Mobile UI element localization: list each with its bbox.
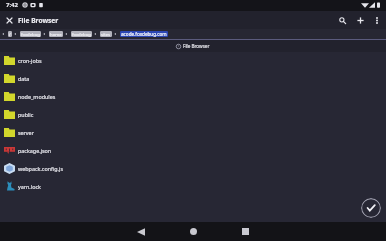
- staticText: /: [9, 31, 11, 37]
- button[interactable]: sites: [100, 31, 112, 37]
- button[interactable]: home: [49, 31, 63, 37]
- button[interactable]: acode.foxdebug.com: [120, 31, 168, 37]
- staticText: File Browser: [183, 43, 210, 49]
- button[interactable]: Close: [3, 14, 16, 27]
- button[interactable]: public: [0, 105, 386, 123]
- staticText: foxdebug: [21, 31, 40, 37]
- button[interactable]: cron-jobs: [0, 51, 386, 69]
- button[interactable]: package.json: [0, 141, 386, 159]
- staticText: File Browser: [18, 16, 59, 25]
- button[interactable]: Confirm: [361, 198, 381, 218]
- staticText: cron-jobs: [18, 57, 42, 64]
- button[interactable]: node_modules: [0, 87, 386, 105]
- staticText: data: [18, 75, 30, 82]
- staticText: sites: [101, 31, 111, 37]
- button[interactable]: Add: [351, 11, 369, 29]
- button[interactable]: File Browser: [166, 40, 220, 52]
- button[interactable]: Back: [128, 222, 154, 241]
- staticText: foxdebug: [72, 31, 91, 37]
- button[interactable]: yarn.lock: [0, 177, 386, 195]
- staticText: package.json: [18, 147, 52, 154]
- staticText: home: [50, 31, 62, 37]
- staticText: yarn.lock: [18, 183, 41, 190]
- button[interactable]: foxdebug: [20, 31, 41, 37]
- button[interactable]: server: [0, 123, 386, 141]
- button[interactable]: More options: [369, 13, 384, 28]
- staticText: 7:42: [6, 1, 18, 9]
- staticText: webpack.config.js: [18, 165, 64, 172]
- staticText: public: [18, 111, 34, 118]
- button[interactable]: Home: [180, 222, 206, 241]
- button[interactable]: data: [0, 69, 386, 87]
- staticText: server: [18, 129, 34, 136]
- button[interactable]: /: [8, 31, 12, 37]
- button[interactable]: Search: [334, 12, 351, 29]
- staticText: node_modules: [18, 93, 56, 100]
- button[interactable]: webpack.config.js: [0, 159, 386, 177]
- button[interactable]: Recents: [232, 222, 258, 241]
- button[interactable]: foxdebug: [71, 31, 92, 37]
- staticText: acode.foxdebug.com: [121, 31, 167, 37]
